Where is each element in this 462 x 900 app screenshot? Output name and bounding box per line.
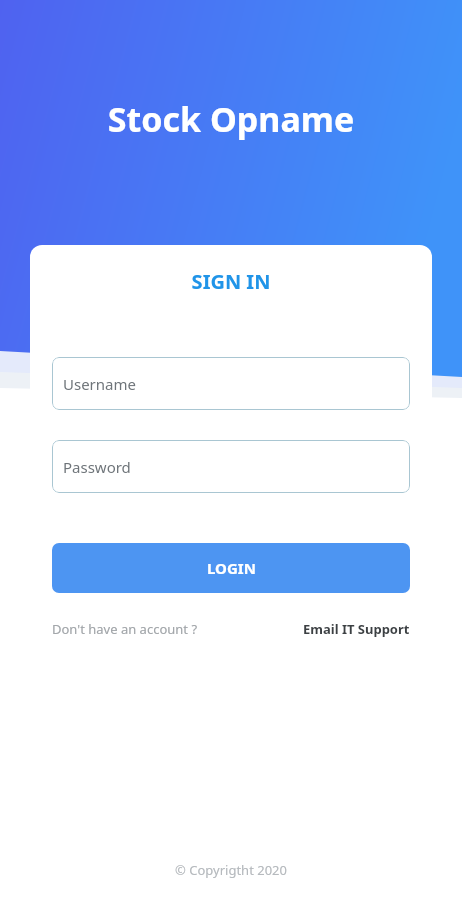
staticText: LOGIN xyxy=(207,558,256,578)
staticText: SIGN IN xyxy=(52,268,410,295)
button[interactable]: LOGIN xyxy=(52,543,410,593)
button[interactable]: Don't have an account ? xyxy=(52,620,198,638)
staticText: Email IT Support xyxy=(303,620,410,638)
staticText: Stock Opname xyxy=(0,96,462,142)
staticText: Username xyxy=(63,374,136,394)
staticText: © Copyrigtht 2020 xyxy=(0,861,462,879)
staticText: Password xyxy=(63,457,131,477)
button[interactable]: Username xyxy=(52,357,410,410)
staticText: Don't have an account ? xyxy=(52,620,198,638)
button[interactable]: Password xyxy=(52,440,410,493)
button[interactable]: Email IT Support xyxy=(303,620,410,638)
